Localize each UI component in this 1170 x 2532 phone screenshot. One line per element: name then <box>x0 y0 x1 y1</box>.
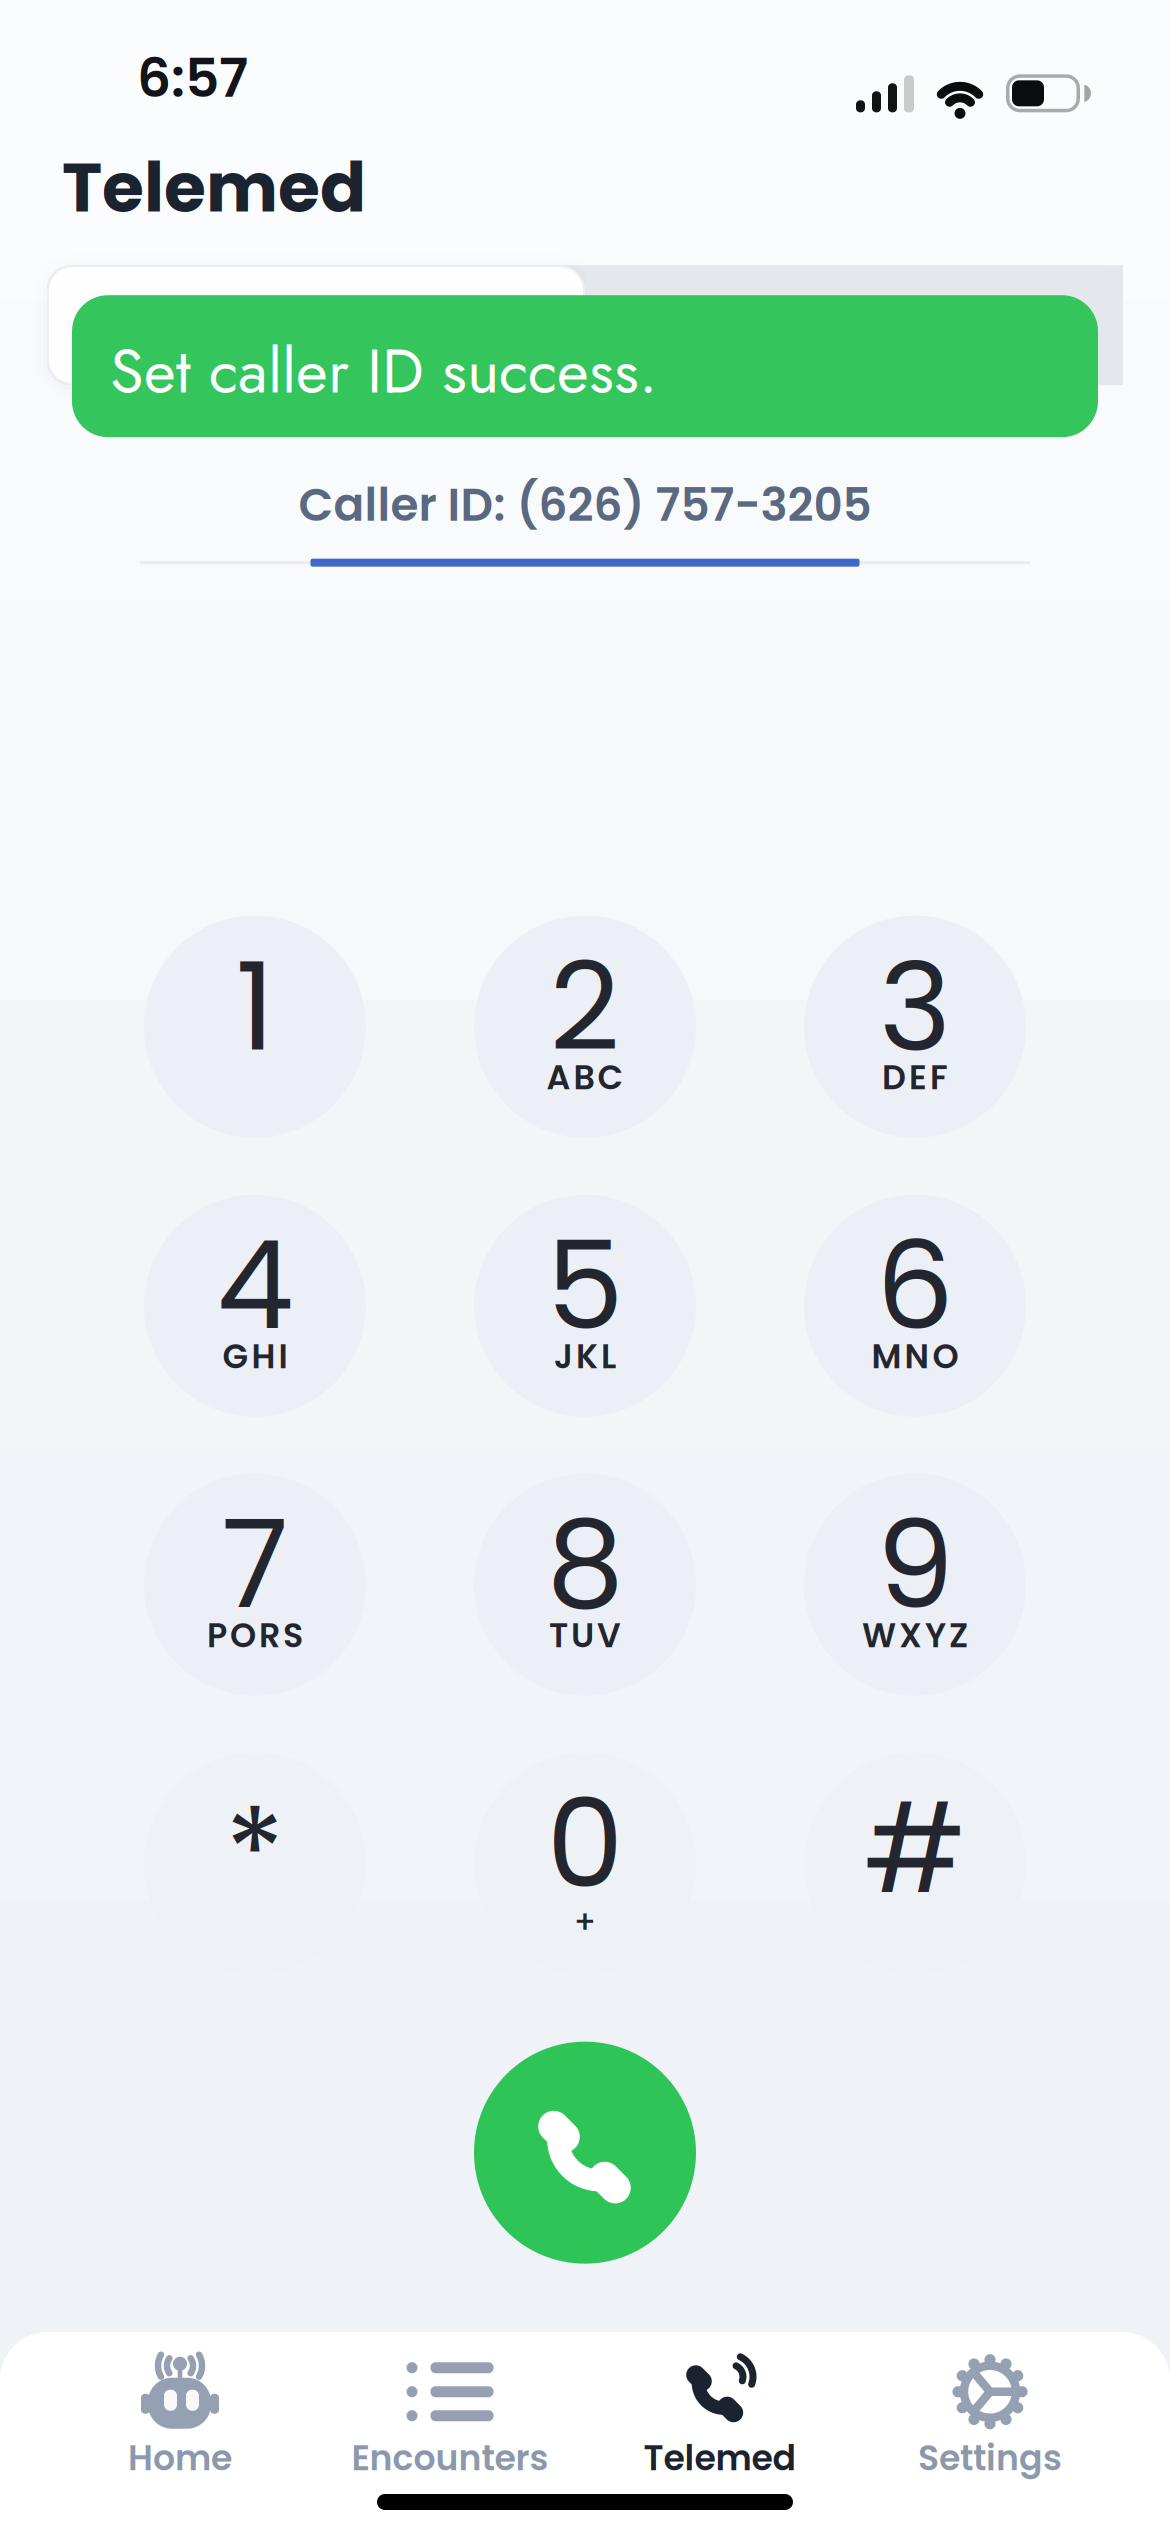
button[interactable]: 3 <box>804 916 1026 1138</box>
staticText: Telemed <box>643 2434 796 2482</box>
button[interactable]: Set caller ID success. <box>72 295 1098 437</box>
staticText: 2 <box>549 921 620 1092</box>
staticText: 0 <box>546 1758 623 1929</box>
staticText: WXYZ <box>862 1612 968 1659</box>
staticText: 5 <box>546 1200 623 1371</box>
staticText: DEF <box>882 1054 948 1101</box>
staticText: MNO <box>871 1333 958 1380</box>
staticText: 1 <box>235 921 274 1092</box>
button[interactable]: Settings <box>855 2352 1125 2484</box>
staticText: Encounters <box>351 2434 548 2482</box>
button[interactable]: 4 <box>144 1195 366 1417</box>
button[interactable]: 5 <box>474 1195 696 1417</box>
button[interactable]: 0 <box>474 1753 696 1975</box>
button[interactable]: Home <box>45 2352 315 2484</box>
button[interactable]: Call <box>474 2042 696 2264</box>
button[interactable]: 1 <box>144 916 366 1138</box>
staticText: 9 <box>876 1479 953 1650</box>
button[interactable]: # <box>804 1753 1026 1975</box>
button[interactable]: 2 <box>474 916 696 1138</box>
button[interactable]: Caller ID <box>47 265 585 385</box>
button[interactable]: Encounters <box>315 2352 585 2484</box>
staticText: 3 <box>879 921 951 1092</box>
staticText: ABC <box>546 1054 623 1101</box>
staticText: PORS <box>207 1612 303 1659</box>
button[interactable]: * <box>144 1753 366 1975</box>
staticText: Home <box>128 2434 232 2482</box>
staticText: 4 <box>216 1200 293 1371</box>
staticText: GHI <box>222 1333 287 1380</box>
staticText: JKL <box>554 1333 616 1380</box>
staticText: Settings <box>918 2434 1062 2482</box>
staticText: * <box>225 1767 285 1938</box>
staticText: TUV <box>549 1612 621 1659</box>
button[interactable]: 7 <box>144 1474 366 1696</box>
staticText: 7 <box>221 1479 288 1650</box>
button[interactable]: 6 <box>804 1195 1026 1417</box>
staticText: + <box>573 1899 596 1944</box>
staticText: # <box>863 1763 966 1934</box>
button[interactable]: Telemed <box>585 2352 855 2484</box>
staticText: Set caller ID success. <box>110 327 657 415</box>
staticText: 8 <box>546 1479 623 1650</box>
staticText: 6:57 <box>137 41 248 115</box>
staticText: 6 <box>876 1200 954 1371</box>
button[interactable]: 8 <box>474 1474 696 1696</box>
staticText: Telemed <box>62 140 366 235</box>
staticText: Caller ID: (626) 757-3205 <box>298 473 871 537</box>
button[interactable]: 9 <box>804 1474 1026 1696</box>
